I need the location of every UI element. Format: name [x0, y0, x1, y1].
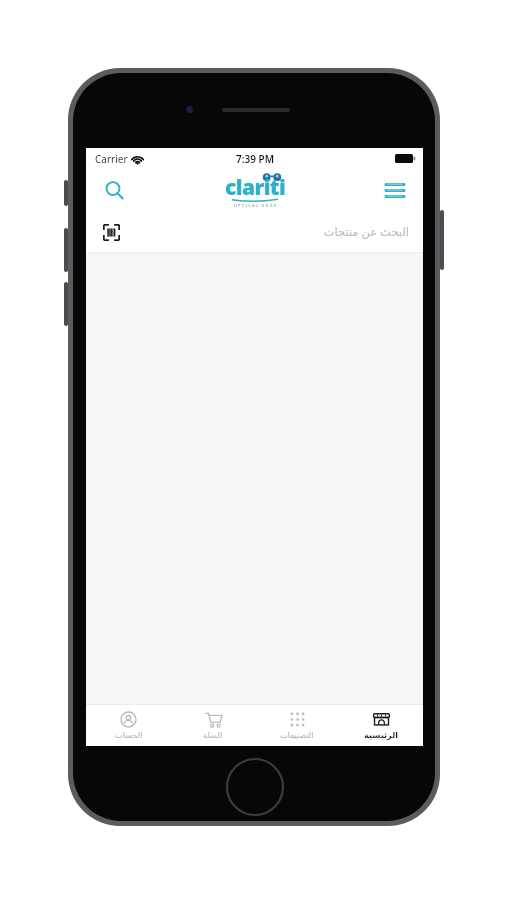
- staticText: O P T I C A L S H O P: [234, 203, 277, 208]
- button[interactable]: الحساب: [86, 705, 171, 746]
- staticText: الحساب: [115, 730, 143, 740]
- staticText: البحث عن منتجات: [323, 224, 409, 240]
- button[interactable]: Scan barcode: [86, 211, 423, 252]
- button[interactable]: التصنيفات: [255, 705, 339, 746]
- button[interactable]: Scan barcode: [100, 221, 122, 243]
- staticText: التصنيفات: [280, 730, 314, 740]
- staticText: 7:39 PM: [236, 152, 274, 166]
- staticText: الرئيسية: [364, 730, 399, 740]
- button[interactable]: Search: [100, 176, 128, 204]
- button[interactable]: الرئيسية: [339, 705, 423, 746]
- button[interactable]: Menu: [381, 176, 409, 204]
- button[interactable]: السلة: [171, 705, 255, 746]
- staticText: السلة: [203, 730, 223, 740]
- staticText: clariti: [225, 173, 286, 199]
- staticText: Carrier: [95, 152, 128, 166]
